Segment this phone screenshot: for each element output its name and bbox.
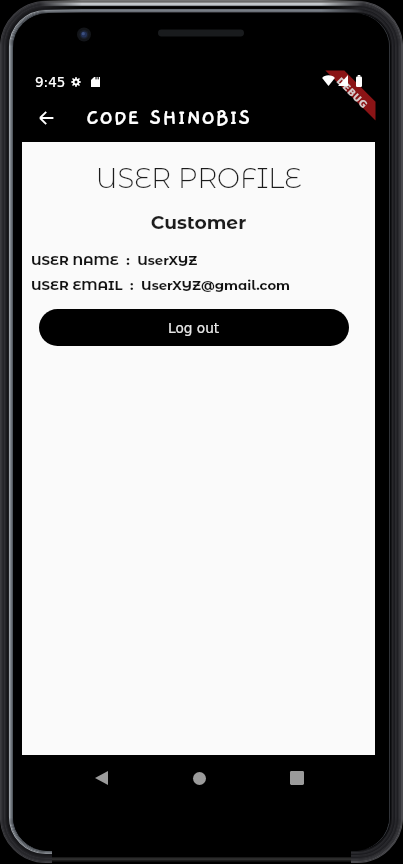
staticText: DEBUG <box>335 75 370 111</box>
button[interactable]: Home <box>179 758 219 798</box>
staticText: USER EMAIL : UserXYZ@gmail.com <box>31 277 291 293</box>
staticText: Customer <box>22 211 375 234</box>
staticText: Log out <box>168 320 220 336</box>
button[interactable]: Log out <box>39 309 349 346</box>
button[interactable]: Recent apps <box>277 758 317 798</box>
staticText: 9:45 <box>35 74 66 90</box>
button[interactable]: Back <box>26 98 66 138</box>
staticText: USER NAME : UserXYZ <box>31 252 198 268</box>
staticText: USER PROFILE <box>22 161 375 194</box>
button[interactable]: Back <box>81 758 121 798</box>
staticText: CODE SHINOBIS <box>86 106 252 130</box>
